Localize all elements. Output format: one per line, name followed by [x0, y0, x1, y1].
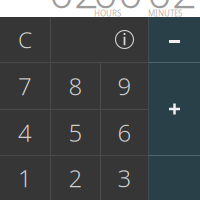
staticText: MINUTES	[148, 8, 182, 19]
button[interactable]: C	[0, 17, 50, 62]
staticText: 00	[93, 0, 143, 20]
staticText: 9	[117, 70, 131, 102]
staticText: 8	[68, 70, 82, 102]
button[interactable]: 3	[101, 156, 148, 200]
button[interactable]: 9	[101, 63, 148, 109]
button[interactable]: 5	[51, 110, 100, 155]
staticText: 02	[147, 0, 197, 20]
staticText: 4	[18, 117, 32, 148]
button[interactable]: Add	[149, 63, 200, 155]
staticText: 02	[49, 0, 99, 20]
staticText: 2	[68, 162, 82, 194]
staticText: 1	[18, 162, 32, 194]
button[interactable]: Subtract	[149, 17, 200, 62]
button[interactable]: 4	[0, 110, 50, 155]
staticText: 7	[18, 70, 32, 102]
staticText: 5	[68, 117, 82, 148]
button[interactable]: 2	[51, 156, 100, 200]
button[interactable]: 1	[0, 156, 50, 200]
button[interactable]: 7	[0, 63, 50, 109]
staticText: 3	[117, 162, 131, 194]
staticText: C	[18, 24, 32, 54]
staticText: 6	[117, 117, 131, 148]
staticText: HOURS	[94, 8, 121, 19]
button[interactable]: Info	[51, 17, 148, 62]
button[interactable]: 6	[101, 110, 148, 155]
button[interactable]: 8	[51, 63, 100, 109]
